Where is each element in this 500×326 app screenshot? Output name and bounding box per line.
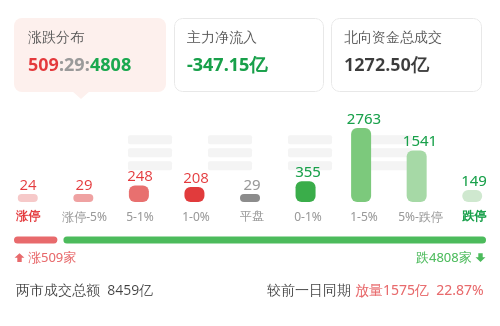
- staticText: 24: [0, 174, 56, 194]
- staticText: 涨停-5%: [62, 208, 107, 224]
- staticText: 放量1575亿 22.87%: [355, 280, 484, 299]
- staticText: :29:: [59, 52, 90, 77]
- staticText: 1272.50亿: [344, 52, 429, 77]
- staticText: 主力净流入: [187, 29, 257, 47]
- staticText: 1541: [392, 130, 448, 150]
- button[interactable]: 主力净流入: [174, 18, 324, 92]
- staticText: 5-1%: [126, 208, 154, 224]
- staticText: 509: [28, 52, 59, 77]
- staticText: 1-0%: [182, 208, 210, 224]
- staticText: 两市成交总额 8459亿: [16, 280, 154, 299]
- staticText: 355: [280, 161, 336, 181]
- button[interactable]: 北向资金总成交: [331, 18, 482, 92]
- staticText: 涨509家: [28, 248, 77, 266]
- staticText: 4808: [90, 52, 132, 77]
- staticText: 248: [112, 165, 168, 185]
- staticText: 29: [56, 174, 112, 194]
- button[interactable]: 涨跌分布: [14, 18, 166, 92]
- staticText: 1-5%: [350, 208, 378, 224]
- staticText: 较前一日同期: [267, 280, 355, 299]
- staticText: 跌停: [462, 208, 486, 223]
- staticText: 平盘: [240, 208, 264, 223]
- staticText: 涨跌分布: [28, 29, 84, 47]
- staticText: 0-1%: [294, 208, 322, 224]
- staticText: 北向资金总成交: [344, 29, 442, 47]
- staticText: 跌4808家: [416, 248, 472, 266]
- staticText: -347.15亿: [187, 52, 268, 77]
- other: Down: [475, 252, 486, 263]
- staticText: 2763: [336, 108, 392, 128]
- staticText: 5%-跌停: [398, 208, 443, 224]
- other: Up: [14, 252, 25, 263]
- staticText: 208: [168, 167, 224, 187]
- staticText: 29: [224, 174, 280, 194]
- staticText: 涨停: [16, 208, 40, 223]
- staticText: 149: [448, 170, 500, 190]
